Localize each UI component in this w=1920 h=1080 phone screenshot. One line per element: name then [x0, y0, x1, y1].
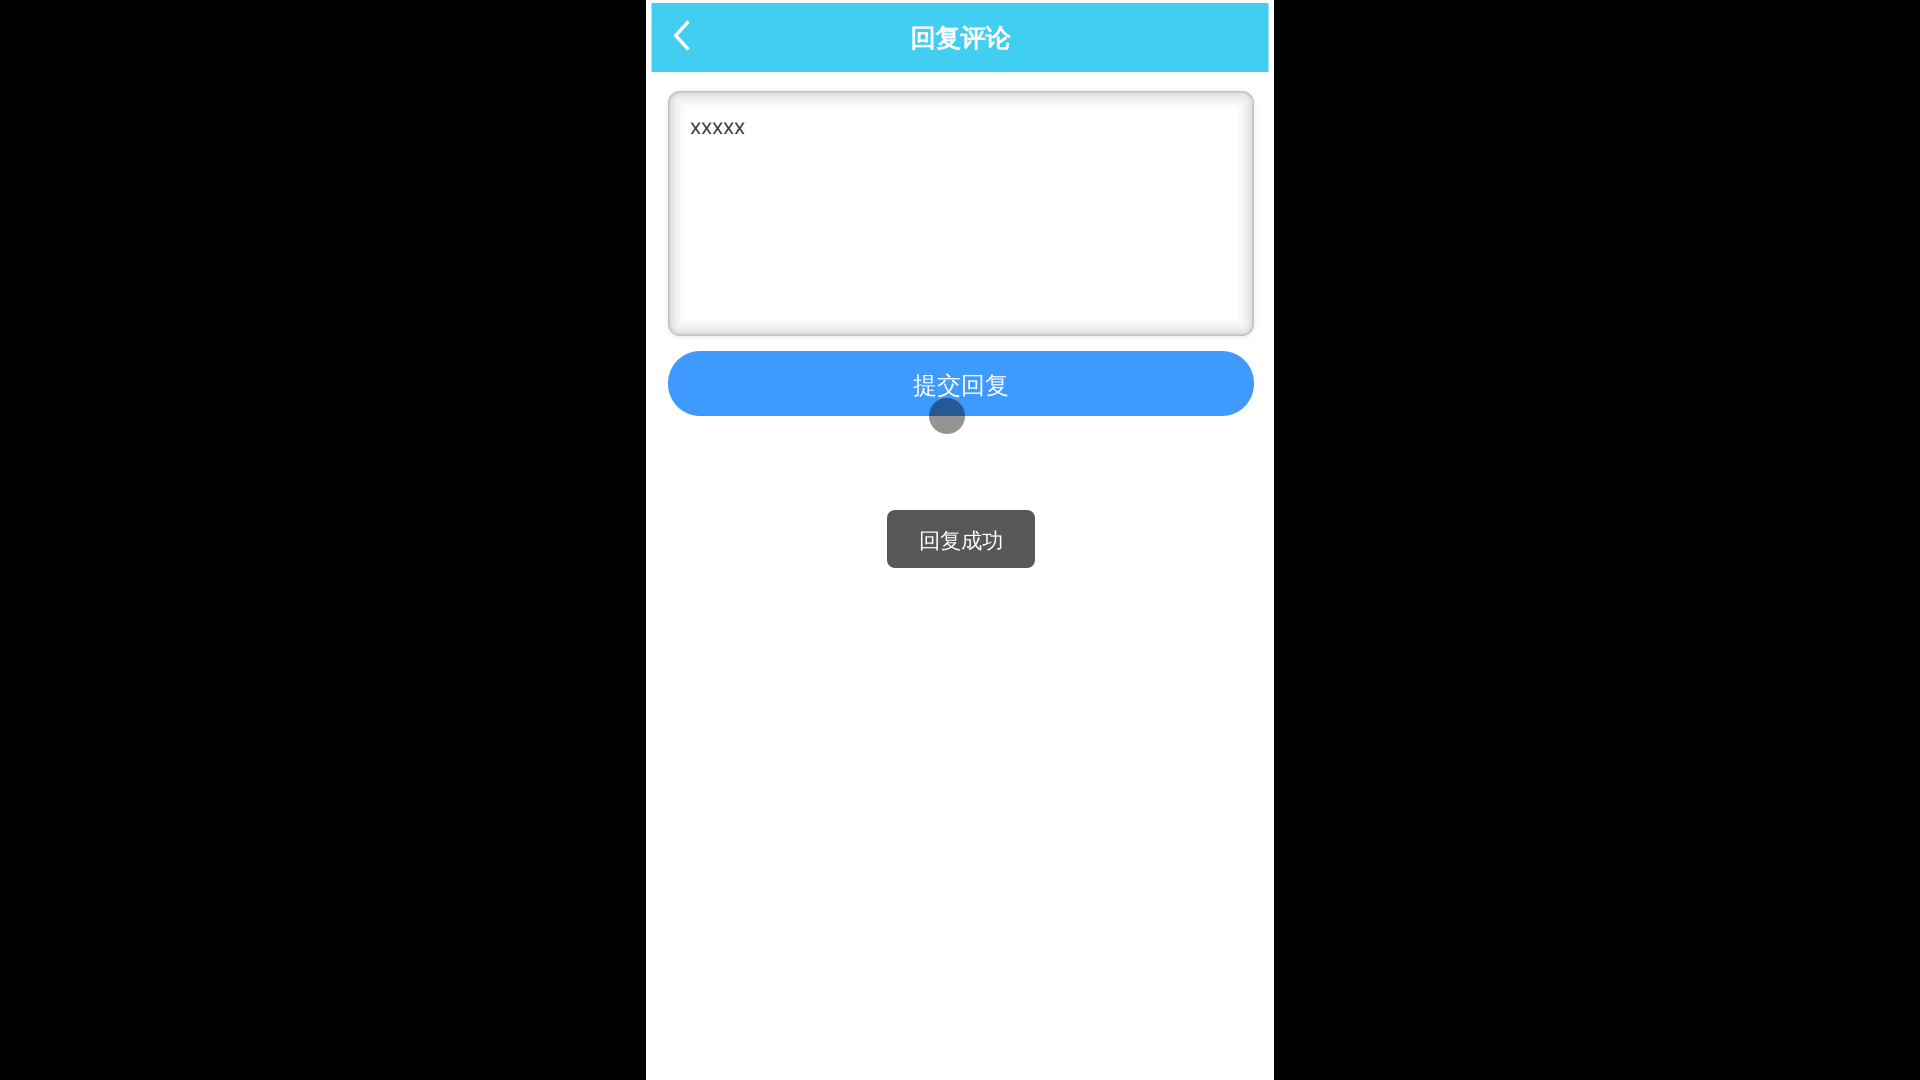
staticText: 提交回复	[913, 371, 1009, 400]
staticText: 回复评论	[910, 23, 1010, 54]
button[interactable]: Back	[651, 3, 717, 72]
button[interactable]: Comment text field	[668, 91, 1254, 336]
staticText: xxxxx	[690, 112, 745, 140]
staticText: 回复成功	[919, 528, 1003, 554]
button[interactable]: 提交回复	[668, 351, 1254, 416]
